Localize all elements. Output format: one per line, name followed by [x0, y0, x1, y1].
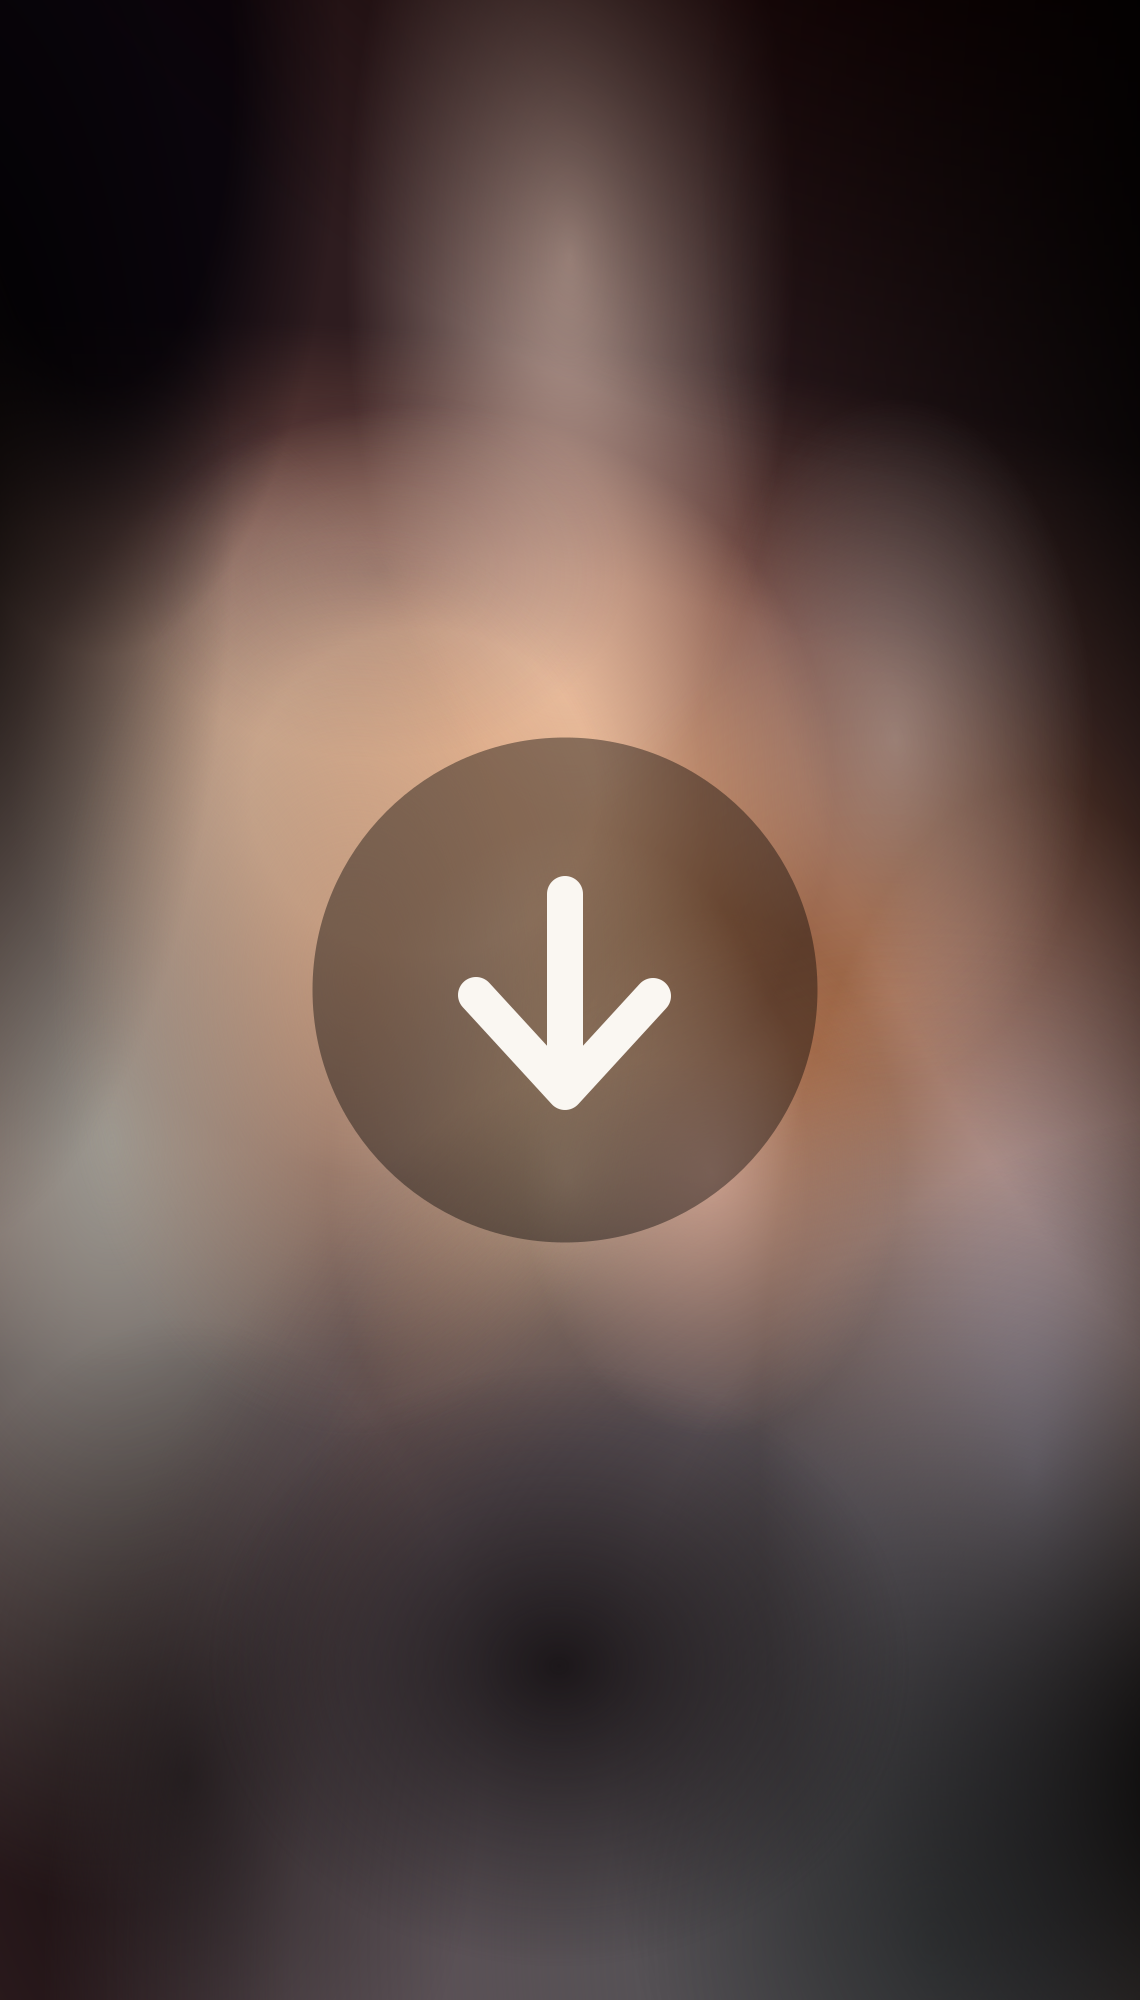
- button[interactable]: Download: [312, 737, 817, 1242]
